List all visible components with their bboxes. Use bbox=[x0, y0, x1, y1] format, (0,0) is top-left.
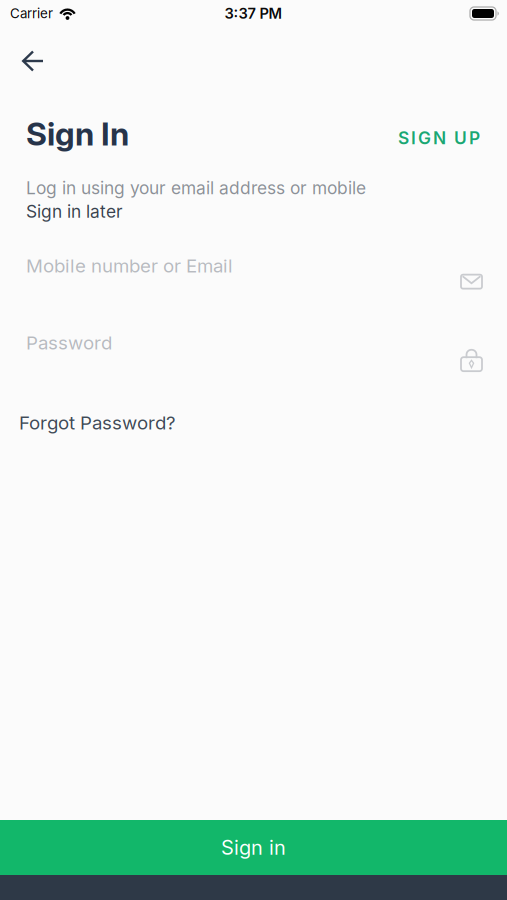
staticText: Sign in later bbox=[26, 201, 123, 222]
staticText: Mobile number or Email bbox=[26, 255, 233, 277]
staticText: Forgot Password? bbox=[19, 412, 176, 434]
staticText: Sign in bbox=[221, 836, 286, 859]
staticText: Password bbox=[26, 332, 112, 354]
button[interactable]: Mobile number or Email bbox=[0, 255, 507, 277]
staticText: SIGN UP bbox=[398, 128, 480, 148]
staticText: Carrier bbox=[10, 6, 53, 21]
staticText: Sign In bbox=[26, 115, 129, 153]
button[interactable]: Forgot Password? bbox=[0, 412, 176, 434]
button[interactable]: Sign in bbox=[0, 820, 507, 875]
button[interactable]: SIGN UP bbox=[398, 124, 480, 144]
staticText: 3:37 PM bbox=[224, 5, 282, 22]
staticText: Log in using your email address or mobil… bbox=[26, 178, 366, 198]
button[interactable]: Back bbox=[0, 27, 44, 72]
button[interactable]: Password bbox=[0, 332, 507, 354]
